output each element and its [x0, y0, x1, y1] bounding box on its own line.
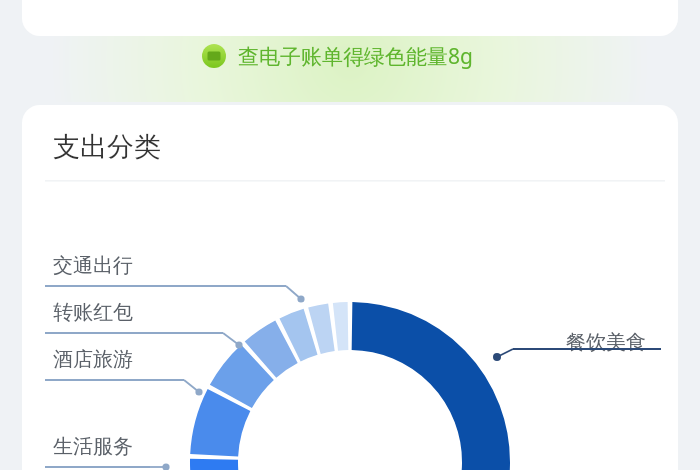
- button[interactable]: 支出分类图表: [0, 0, 700, 470]
